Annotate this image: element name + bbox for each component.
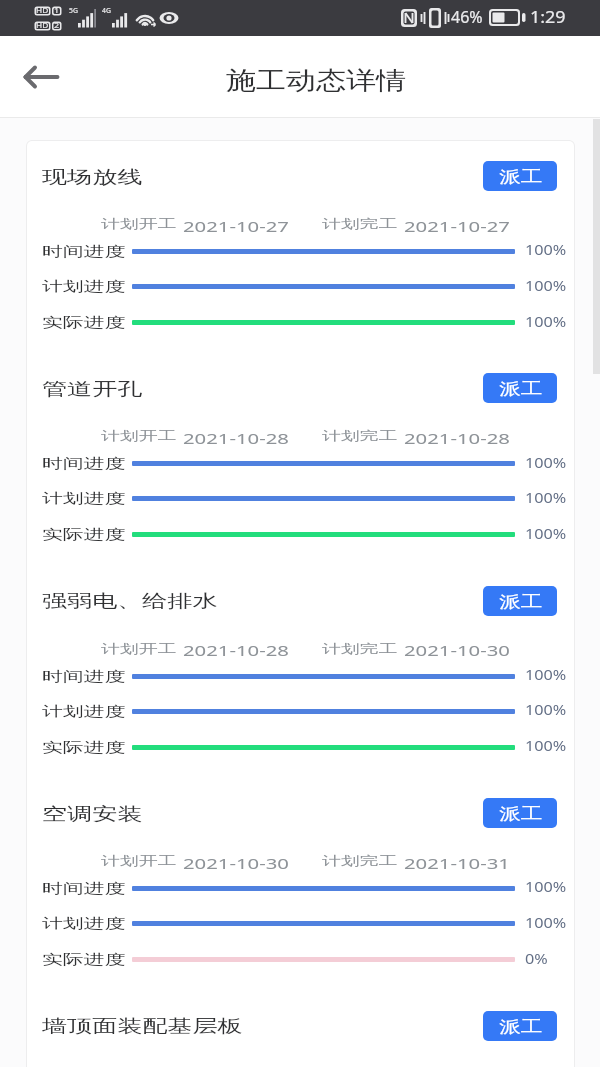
button[interactable]: 派工 — [483, 1011, 557, 1041]
staticText: 计划完工 — [322, 853, 398, 869]
staticText: 1:29 — [530, 5, 566, 28]
staticText: 派工 — [499, 1017, 542, 1037]
staticText: 计划完工 — [322, 641, 398, 657]
staticText: 100% — [525, 735, 567, 755]
staticText: 派工 — [499, 167, 542, 187]
staticText: 0% — [525, 948, 549, 968]
staticText: 4G — [102, 5, 111, 15]
button[interactable]: Back — [19, 53, 67, 101]
staticText: 实际进度 — [42, 526, 125, 543]
staticText: 派工 — [499, 804, 542, 824]
staticText: 100% — [525, 275, 567, 295]
staticText: 现场放线 — [42, 166, 142, 188]
staticText: 施工动态详情 — [226, 65, 406, 96]
staticText: 2021-10-28 — [404, 429, 511, 448]
staticText: 计划完工 — [322, 428, 398, 444]
staticText: 2021-10-30 — [183, 854, 290, 873]
staticText: 2021-10-31 — [404, 854, 511, 873]
button[interactable]: 管道开孔 — [27, 357, 574, 551]
staticText: 2021-10-30 — [404, 641, 511, 660]
staticText: 5G — [69, 5, 78, 15]
staticText: 计划进度 — [42, 915, 125, 932]
button[interactable]: 现场放线 — [27, 145, 574, 339]
staticText: 实际进度 — [42, 951, 125, 968]
staticText: 计划开工 — [101, 216, 177, 232]
staticText: 2021-10-27 — [183, 217, 290, 236]
staticText: 墙顶面装配基层板 — [42, 1015, 243, 1037]
staticText: 实际进度 — [42, 739, 125, 756]
button[interactable]: 墙顶面装配基层板 — [27, 995, 574, 1067]
staticText: 计划完工 — [322, 216, 398, 232]
staticText: 派工 — [499, 592, 542, 612]
staticText: 100% — [525, 912, 567, 932]
staticText: HD — [36, 4, 49, 14]
staticText: 时间进度 — [42, 668, 125, 685]
staticText: 派工 — [499, 379, 542, 399]
staticText: 46% — [451, 5, 483, 28]
staticText: 时间进度 — [42, 243, 125, 260]
button[interactable]: 派工 — [483, 161, 557, 191]
staticText: 计划开工 — [101, 641, 177, 657]
staticText: 100% — [525, 487, 567, 507]
button[interactable]: 强弱电、给排水 — [27, 570, 574, 764]
staticText: 2021-10-28 — [183, 429, 290, 448]
staticText: 实际进度 — [42, 314, 125, 331]
staticText: 时间进度 — [42, 880, 125, 897]
staticText: 100% — [525, 523, 567, 543]
staticText: 管道开孔 — [42, 378, 142, 400]
staticText: 100% — [525, 876, 567, 896]
staticText: 100% — [525, 699, 567, 719]
staticText: 计划开工 — [101, 428, 177, 444]
staticText: 计划进度 — [42, 278, 125, 295]
button[interactable]: 派工 — [483, 798, 557, 828]
staticText: 强弱电、给排水 — [42, 590, 218, 612]
staticText: 100% — [525, 664, 567, 684]
staticText: 2021-10-27 — [404, 217, 511, 236]
staticText: 时间进度 — [42, 455, 125, 472]
staticText: 空调安装 — [42, 803, 142, 825]
staticText: 2021-10-28 — [183, 641, 290, 660]
button[interactable]: 空调安装 — [27, 782, 574, 976]
staticText: 1 — [54, 4, 60, 14]
button[interactable]: 派工 — [483, 586, 557, 616]
staticText: 100% — [525, 452, 567, 472]
staticText: 2 — [54, 19, 60, 29]
staticText: 计划进度 — [42, 490, 125, 507]
staticText: HD — [36, 19, 49, 29]
staticText: 100% — [525, 239, 567, 259]
staticText: 计划开工 — [101, 853, 177, 869]
button[interactable]: 派工 — [483, 373, 557, 403]
staticText: 100% — [525, 311, 567, 331]
staticText: 计划进度 — [42, 703, 125, 720]
